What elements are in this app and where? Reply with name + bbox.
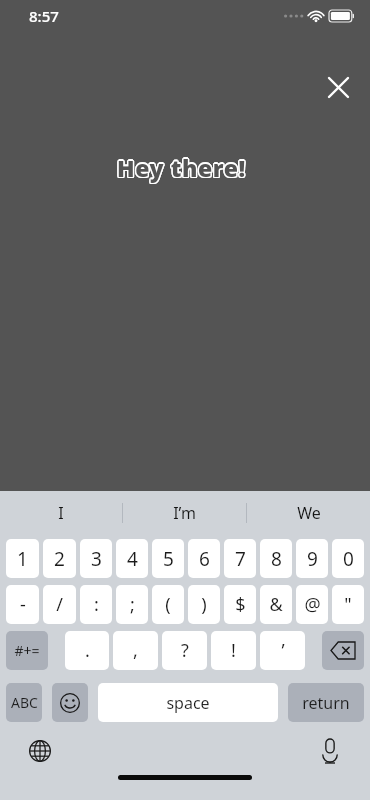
button[interactable]: Change keyboard language <box>22 733 58 769</box>
staticText: . <box>85 638 90 663</box>
staticText: We <box>297 502 321 524</box>
button[interactable]: 7 <box>224 539 256 578</box>
button[interactable]: 6 <box>188 539 220 578</box>
button[interactable]: We <box>247 491 370 535</box>
button[interactable]: 8 <box>260 539 292 578</box>
button[interactable]: 3 <box>80 539 112 578</box>
button[interactable]: 9 <box>296 539 328 578</box>
button[interactable]: $ <box>224 585 256 624</box>
button[interactable]: 1 <box>6 539 39 578</box>
staticText: ? <box>181 638 189 663</box>
staticText: space <box>166 692 210 714</box>
button[interactable]: " <box>332 585 364 624</box>
button[interactable]: ABC <box>6 683 42 722</box>
button[interactable]: I’m <box>123 491 246 535</box>
button[interactable]: ? <box>162 631 207 670</box>
button[interactable]: I <box>0 491 122 535</box>
button[interactable]: ! <box>211 631 256 670</box>
staticText: - <box>20 592 26 617</box>
staticText: I <box>58 502 64 524</box>
staticText: ; <box>130 592 135 617</box>
staticText: ! <box>231 638 236 663</box>
button[interactable]: & <box>260 585 292 624</box>
button[interactable]: Dictation <box>312 733 348 769</box>
button[interactable]: ’ <box>260 631 305 670</box>
staticText: & <box>269 592 283 617</box>
button[interactable]: @ <box>296 585 328 624</box>
button[interactable]: #+= <box>6 631 48 670</box>
staticText: 2 <box>54 546 65 572</box>
button[interactable]: 0 <box>332 539 364 578</box>
button[interactable]: - <box>6 585 39 624</box>
staticText: 3 <box>91 546 102 572</box>
staticText: @ <box>304 592 321 617</box>
staticText: ) <box>201 592 207 617</box>
button[interactable]: ) <box>188 585 220 624</box>
staticText: 0 <box>343 546 354 572</box>
button[interactable]: . <box>65 631 109 670</box>
staticText: ’ <box>281 638 285 663</box>
staticText: " <box>344 592 352 617</box>
staticText: ( <box>165 592 171 617</box>
staticText: , <box>133 638 138 663</box>
button[interactable]: 2 <box>43 539 76 578</box>
staticText: #+= <box>14 641 40 660</box>
button[interactable]: : <box>80 585 112 624</box>
button[interactable]: return <box>288 683 364 722</box>
staticText: 4 <box>127 546 138 572</box>
button[interactable]: ( <box>152 585 184 624</box>
staticText: 1 <box>17 546 28 572</box>
staticText: / <box>56 592 63 617</box>
button[interactable]: ; <box>116 585 148 624</box>
staticText: 8:57 <box>29 6 59 26</box>
staticText: I’m <box>173 502 196 524</box>
staticText: 8 <box>271 546 282 572</box>
staticText: : <box>94 592 99 617</box>
staticText: 5 <box>163 546 174 572</box>
button[interactable]: Emoji <box>52 683 88 722</box>
staticText: 6 <box>199 546 210 572</box>
button[interactable]: Close <box>320 69 356 105</box>
button[interactable]: space <box>98 683 278 722</box>
staticText: 9 <box>307 546 318 572</box>
staticText: return <box>302 692 350 714</box>
staticText: $ <box>235 592 246 617</box>
staticText: 7 <box>235 546 246 572</box>
button[interactable]: Delete <box>322 631 364 670</box>
button[interactable]: / <box>43 585 76 624</box>
staticText: ABC <box>11 693 38 712</box>
button[interactable]: 4 <box>116 539 148 578</box>
button[interactable]: , <box>113 631 158 670</box>
button[interactable]: 5 <box>152 539 184 578</box>
